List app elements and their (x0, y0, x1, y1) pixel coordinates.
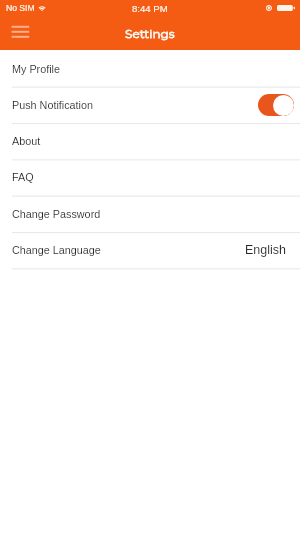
staticText: About (12, 135, 41, 147)
button[interactable]: Change Language (0, 232, 300, 268)
button[interactable]: Open navigation menu (5, 21, 36, 49)
staticText: Change Password (12, 208, 101, 220)
staticText: English (245, 243, 286, 257)
staticText: 8:44 PM (132, 3, 168, 14)
button[interactable]: FAQ (0, 159, 300, 195)
staticText: Change Language (12, 244, 101, 256)
button[interactable]: About (0, 123, 300, 159)
button[interactable]: Change Password (0, 196, 300, 232)
staticText: My Profile (12, 63, 60, 75)
staticText: No SIM (6, 3, 35, 13)
button[interactable]: Push notification toggle (258, 94, 294, 116)
staticText: FAQ (12, 171, 34, 183)
staticText: Settings (125, 26, 175, 41)
staticText: Push Notification (12, 99, 94, 111)
button[interactable]: My Profile (0, 50, 300, 87)
button[interactable]: Push Notification (0, 87, 300, 123)
